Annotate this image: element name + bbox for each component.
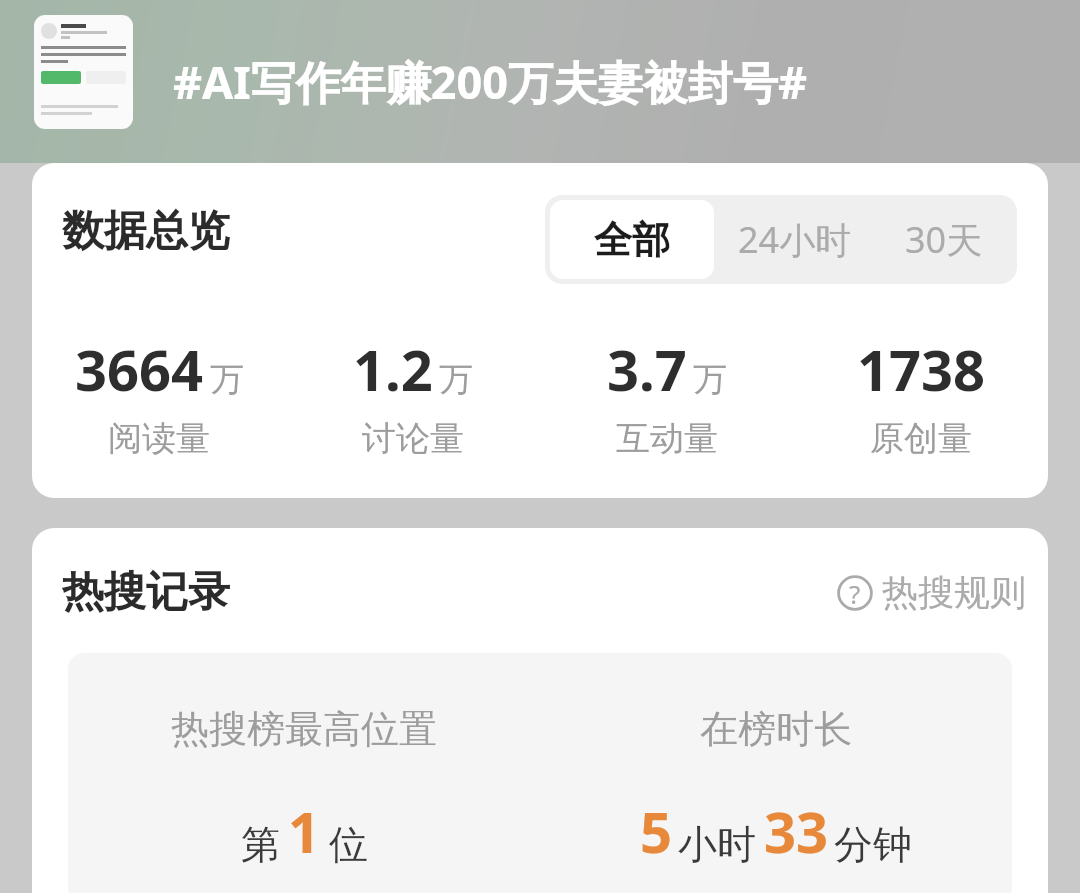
button[interactable]: 3664 (32, 331, 286, 460)
staticText: 分钟 (834, 820, 912, 869)
staticText: 全部 (594, 216, 670, 264)
button[interactable]: 30天 (876, 200, 1012, 279)
staticText: ? (849, 576, 861, 611)
staticText: 万 (210, 358, 244, 401)
staticText: 5 (640, 793, 673, 869)
staticText: 1.2 (353, 331, 433, 407)
staticText: 位 (329, 820, 368, 869)
staticText: 原创量 (870, 417, 972, 460)
button[interactable]: 1.2 (286, 331, 540, 460)
staticText: 数据总览 (62, 205, 230, 258)
staticText: 在榜时长 (700, 705, 852, 753)
staticText: 小时 (678, 820, 756, 869)
staticText: 万 (439, 358, 473, 401)
button[interactable]: 3.7 (540, 331, 794, 460)
button[interactable]: 话题配图 (34, 15, 133, 129)
staticText: 阅读量 (108, 417, 210, 460)
button[interactable]: 24小时 (714, 200, 876, 279)
staticText: 万 (693, 358, 727, 401)
button[interactable]: 在榜时长 (540, 653, 1012, 893)
staticText: 第 (241, 820, 280, 869)
staticText: 热搜榜最高位置 (171, 705, 437, 753)
button[interactable]: 全部 (550, 200, 714, 279)
staticText: 讨论量 (362, 417, 464, 460)
button[interactable]: ? (837, 570, 1026, 615)
staticText: 3.7 (607, 331, 687, 407)
staticText: 热搜记录 (62, 566, 230, 619)
staticText: 3664 (75, 331, 204, 407)
staticText: 24小时 (738, 215, 852, 264)
staticText: 热搜规则 (882, 570, 1026, 615)
staticText: 33 (764, 793, 829, 869)
staticText: 互动量 (616, 417, 718, 460)
staticText: 1738 (857, 331, 986, 407)
staticText: #AI写作年赚200万夫妻被封号# (173, 51, 808, 112)
button[interactable]: 1738 (794, 331, 1048, 460)
staticText: 30天 (905, 215, 983, 264)
button[interactable]: 热搜榜最高位置 (68, 653, 540, 893)
staticText: 1 (288, 793, 321, 869)
